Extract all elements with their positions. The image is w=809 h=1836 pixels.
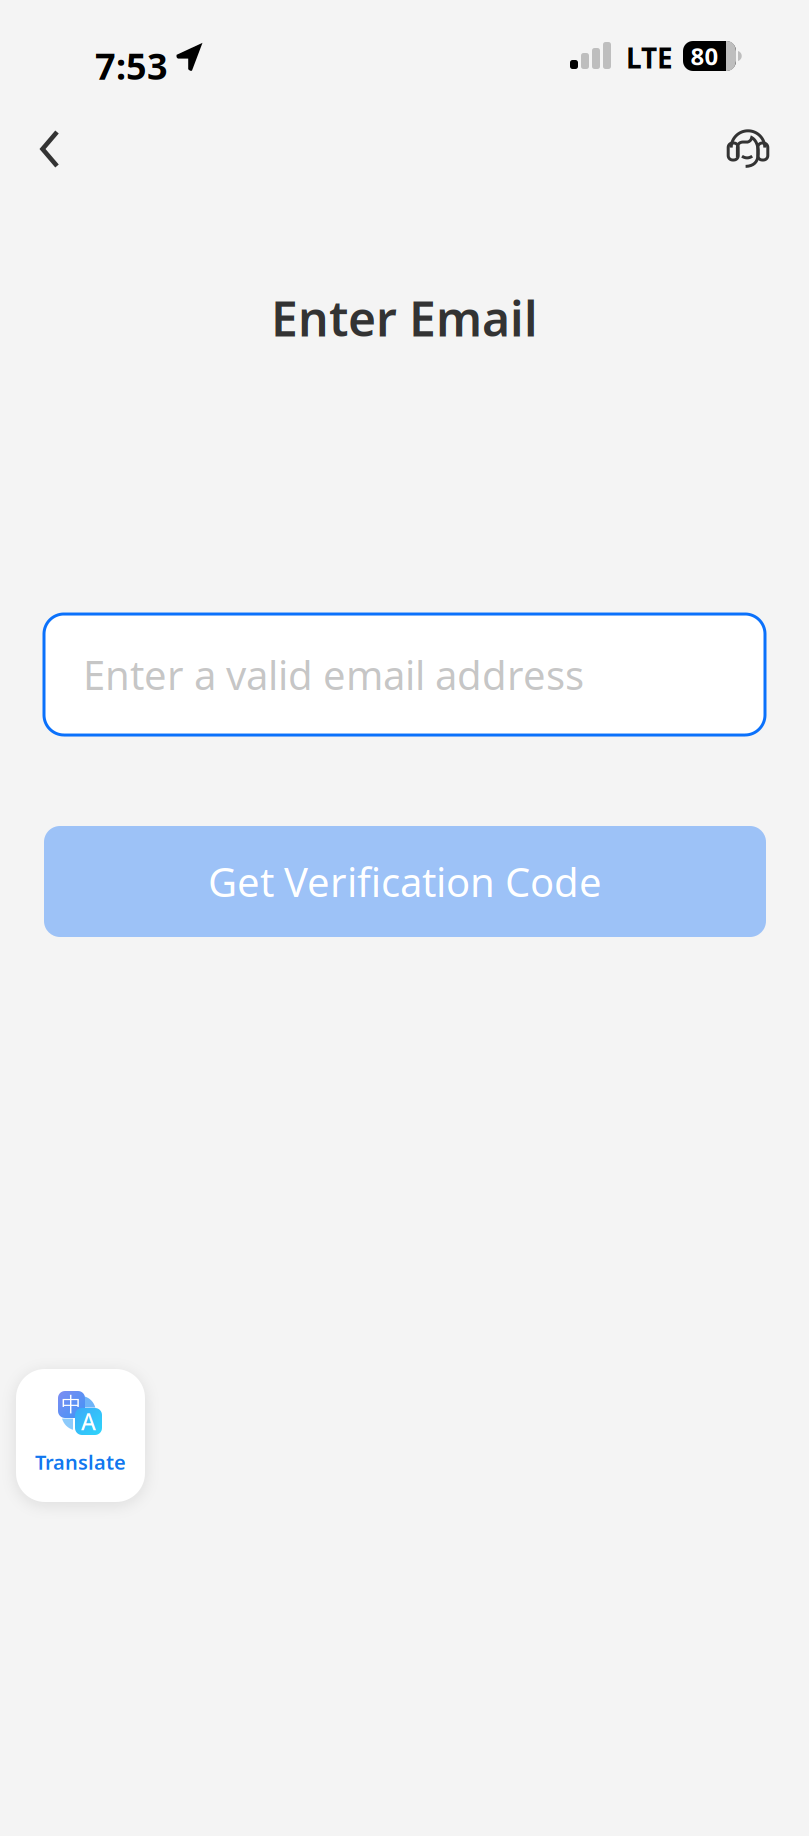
button[interactable]: Get Verification Code [44, 826, 766, 937]
button[interactable]: Enter a valid email address [44, 614, 765, 735]
staticText: 80 [690, 40, 718, 72]
staticText: 7:53 [95, 42, 168, 90]
staticText: 中 [61, 1392, 81, 1417]
staticText: Enter Email [271, 286, 538, 350]
button[interactable]: 中 [16, 1369, 145, 1502]
staticText: LTE [626, 39, 673, 76]
staticText: Enter a valid email address [83, 648, 584, 701]
staticText: Get Verification Code [208, 855, 602, 908]
staticText: A [81, 1406, 96, 1436]
button[interactable]: Customer support [708, 109, 788, 189]
staticText: Translate [35, 1449, 126, 1475]
button[interactable]: Back [10, 109, 90, 189]
